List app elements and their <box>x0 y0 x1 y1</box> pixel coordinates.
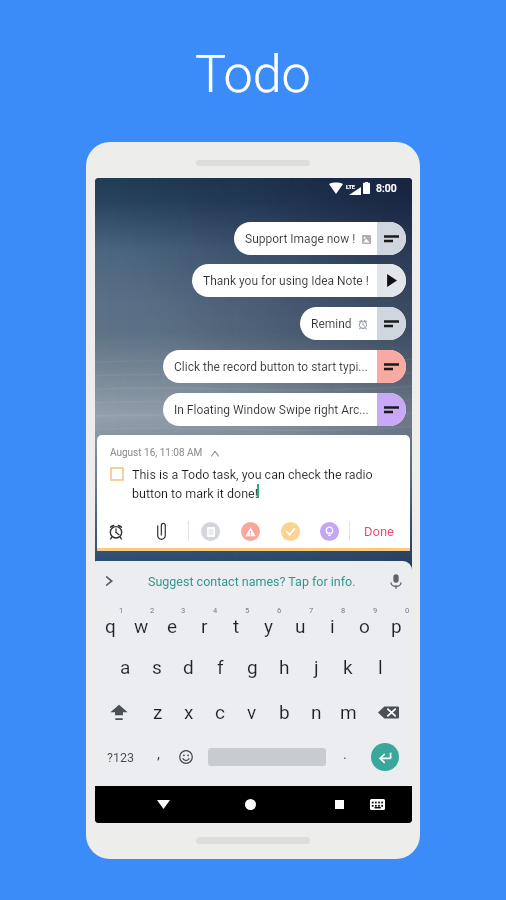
staticText: l <box>378 656 383 678</box>
button[interactable]: Home <box>234 786 266 823</box>
button[interactable]: 4 <box>188 604 220 644</box>
staticText: n <box>311 701 322 723</box>
staticText: 5 <box>245 606 250 615</box>
staticText: button to mark it done! <box>132 486 258 501</box>
staticText: LTE <box>346 184 355 190</box>
staticText: a <box>120 656 131 678</box>
button[interactable]: In Floating Window Swipe right Arc... <box>163 393 406 426</box>
button[interactable]: n <box>300 692 332 732</box>
button[interactable]: Category label <box>313 515 345 547</box>
staticText: c <box>215 701 225 723</box>
staticText: Thank you for using Idea Note ! <box>203 274 369 288</box>
staticText: Done <box>364 524 395 539</box>
staticText: e <box>167 615 178 637</box>
button[interactable]: 7 <box>284 604 316 644</box>
staticText: y <box>264 615 273 637</box>
staticText: 8:00 <box>376 182 397 194</box>
button[interactable]: Back <box>147 786 179 823</box>
button[interactable]: a <box>110 647 141 687</box>
button[interactable]: 8 <box>316 604 348 644</box>
staticText: s <box>152 656 162 678</box>
button[interactable]: h <box>268 647 300 687</box>
button[interactable]: . <box>332 737 358 777</box>
staticText: Remind <box>311 317 352 331</box>
staticText: 3 <box>181 606 186 615</box>
button[interactable]: Category label <box>194 515 226 547</box>
button[interactable]: g <box>236 647 268 687</box>
staticText: h <box>279 656 290 678</box>
button[interactable]: , <box>145 737 171 777</box>
button[interactable]: Category label <box>234 515 266 547</box>
staticText: 0 <box>405 606 410 615</box>
button[interactable]: 2 <box>126 604 157 644</box>
staticText: m <box>340 701 357 723</box>
staticText: 8 <box>341 606 346 615</box>
button[interactable]: Expand suggestions <box>95 561 123 601</box>
button[interactable]: Click the record button to start typi... <box>163 350 406 383</box>
button[interactable]: 1 <box>95 604 126 644</box>
button[interactable]: Switch keyboard <box>361 786 393 823</box>
staticText: This is a Todo task, you can check the r… <box>132 467 373 482</box>
button[interactable]: Done <box>353 515 405 547</box>
button[interactable]: Thank you for using Idea Note ! <box>192 264 406 297</box>
button[interactable]: x <box>173 692 204 732</box>
button[interactable]: 0 <box>380 604 412 644</box>
button[interactable]: f <box>204 647 236 687</box>
staticText: r <box>201 615 208 637</box>
staticText: 2 <box>150 606 155 615</box>
staticText: August 16, 11:08 AM <box>110 447 203 459</box>
button[interactable]: s <box>141 647 172 687</box>
button[interactable]: 6 <box>252 604 284 644</box>
staticText: p <box>391 615 402 637</box>
button[interactable]: Shift <box>95 692 142 732</box>
button[interactable]: Category label <box>274 515 306 547</box>
staticText: 4 <box>213 606 218 615</box>
staticText: b <box>279 701 290 723</box>
button[interactable]: Remind <box>300 307 406 340</box>
button[interactable]: 9 <box>348 604 380 644</box>
button[interactable]: m <box>332 692 364 732</box>
staticText: f <box>217 656 224 678</box>
staticText: , <box>157 745 160 763</box>
button[interactable]: j <box>300 647 332 687</box>
staticText: ?123 <box>107 750 134 765</box>
button[interactable]: 3 <box>157 604 188 644</box>
button[interactable]: v <box>236 692 268 732</box>
staticText: 6 <box>277 606 282 615</box>
button[interactable]: 5 <box>220 604 252 644</box>
button[interactable]: Voice input <box>380 561 412 601</box>
button[interactable]: z <box>142 692 173 732</box>
staticText: 9 <box>373 606 378 615</box>
staticText: 1 <box>119 606 124 615</box>
staticText: Click the record button to start typi... <box>174 360 368 374</box>
staticText: t <box>233 615 240 637</box>
button[interactable]: l <box>364 647 396 687</box>
staticText: z <box>153 701 163 723</box>
button[interactable]: b <box>268 692 300 732</box>
staticText: u <box>295 615 306 637</box>
button[interactable]: Backspace <box>364 692 412 732</box>
button[interactable]: Set reminder <box>100 515 132 547</box>
staticText: Todo <box>195 44 311 105</box>
staticText: q <box>105 615 116 637</box>
button[interactable]: Recents <box>323 786 355 823</box>
staticText: 7 <box>309 606 314 615</box>
button[interactable]: k <box>332 647 364 687</box>
staticText: o <box>359 615 370 637</box>
staticText: g <box>247 656 258 678</box>
button[interactable]: ?123 <box>95 737 145 777</box>
button[interactable]: Emoji <box>171 737 201 777</box>
button[interactable]: c <box>204 692 236 732</box>
staticText: In Floating Window Swipe right Arc... <box>174 403 369 417</box>
button[interactable]: Support Image now ! <box>234 222 406 255</box>
button[interactable]: Attach file <box>145 515 177 547</box>
staticText: Support Image now ! <box>245 232 356 246</box>
staticText: v <box>247 701 257 723</box>
staticText: d <box>183 656 194 678</box>
button[interactable]: Enter <box>358 737 412 777</box>
button[interactable]: Space <box>201 737 332 777</box>
staticText: k <box>343 656 353 678</box>
button[interactable]: d <box>172 647 204 687</box>
staticText: Suggest contact names? Tap for info. <box>148 574 356 589</box>
staticText: j <box>314 656 319 678</box>
